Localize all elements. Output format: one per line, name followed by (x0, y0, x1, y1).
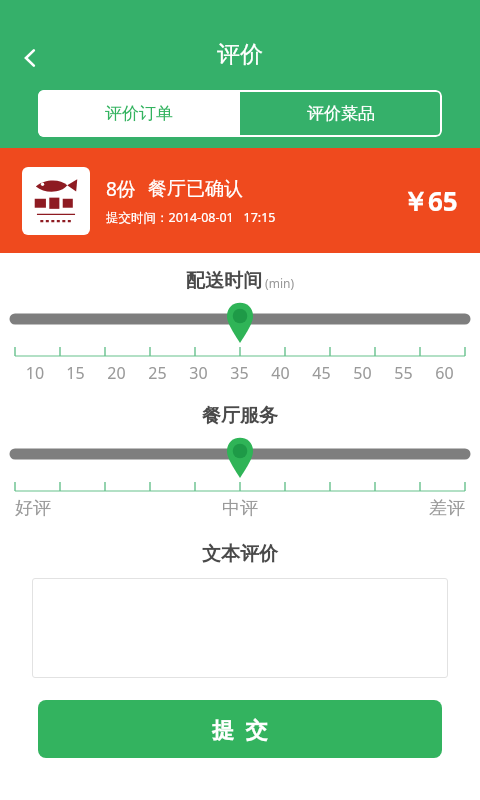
staticText: 15 (55, 362, 96, 384)
staticText: 餐厅服务 (202, 404, 278, 428)
staticText: 50 (342, 362, 383, 384)
button[interactable]: 评价订单 (38, 90, 240, 137)
staticText: 配送时间 (186, 269, 262, 293)
staticText: 20 (96, 362, 137, 384)
staticText: 60 (424, 362, 465, 384)
staticText: 35 (219, 362, 260, 384)
staticText: 45 (301, 362, 342, 384)
button[interactable]: Text review input (32, 578, 448, 678)
staticText: 30 (178, 362, 219, 384)
staticText: 评价菜品 (307, 103, 375, 124)
staticText: 提 交 (212, 714, 268, 744)
staticText: 餐厅已确认 (148, 177, 243, 201)
staticText: 评价订单 (105, 103, 173, 124)
staticText: 差评 (315, 497, 465, 520)
staticText: 40 (260, 362, 301, 384)
button[interactable]: 评价菜品 (240, 90, 442, 137)
button[interactable]: 8份 (0, 148, 480, 253)
staticText: 8份 (106, 176, 136, 202)
staticText: 25 (137, 362, 178, 384)
button[interactable]: 提 交 (38, 700, 442, 758)
staticText: (min) (262, 275, 295, 291)
staticText: 好评 (15, 497, 165, 520)
button[interactable]: Slider (0, 438, 480, 478)
staticText: 55 (383, 362, 424, 384)
staticText: 中评 (165, 497, 315, 520)
button[interactable]: Back (6, 34, 54, 82)
staticText: 提交时间：2014-08-01 17:15 (106, 209, 276, 226)
staticText: 评价 (217, 40, 263, 69)
staticText: 10 (15, 362, 55, 384)
staticText: ￥65 (402, 183, 458, 219)
button[interactable]: Slider (0, 303, 480, 343)
staticText: 文本评价 (202, 542, 278, 566)
